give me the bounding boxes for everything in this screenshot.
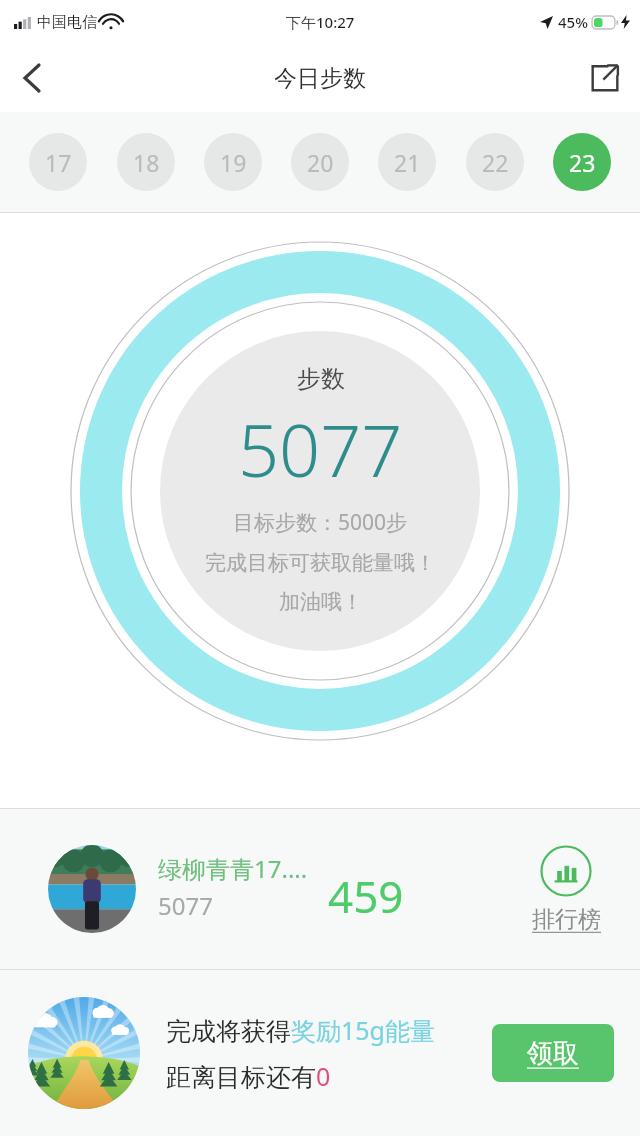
- staticText: 23: [569, 147, 596, 178]
- button[interactable]: 19: [204, 133, 262, 191]
- button[interactable]: 18: [117, 133, 175, 191]
- button[interactable]: 23: [553, 133, 611, 191]
- button[interactable]: 排行榜: [518, 845, 614, 934]
- staticText: 19: [220, 147, 247, 178]
- staticText: 20: [307, 147, 334, 178]
- staticText: 22: [482, 147, 509, 178]
- staticText: 5077: [238, 400, 403, 498]
- staticText: 459: [328, 866, 404, 926]
- staticText: 完成目标可获取能量哦！: [205, 550, 436, 576]
- button[interactable]: 22: [466, 133, 524, 191]
- staticText: 下午10:27: [286, 12, 355, 32]
- button[interactable]: Back: [0, 44, 64, 112]
- staticText: 距离目标还有0: [166, 1059, 331, 1093]
- staticText: 完成将获得奖励15g能量: [166, 1013, 435, 1047]
- button[interactable]: 21: [378, 133, 436, 191]
- staticText: 5077: [158, 889, 213, 922]
- button[interactable]: 17: [29, 133, 87, 191]
- staticText: 18: [133, 147, 160, 178]
- staticText: 17: [45, 147, 72, 178]
- staticText: 步数: [297, 364, 345, 394]
- staticText: 目标步数：5000步: [233, 508, 408, 537]
- staticText: 加油哦！: [279, 589, 363, 615]
- button[interactable]: Share: [570, 44, 640, 112]
- button[interactable]: 领取: [492, 1024, 614, 1082]
- staticText: 21: [394, 147, 421, 178]
- button[interactable]: 绿柳青青17....: [0, 809, 640, 969]
- staticText: 中国电信: [37, 13, 97, 32]
- staticText: 领取: [527, 1037, 579, 1070]
- staticText: 今日步数: [274, 64, 366, 93]
- staticText: 排行榜: [532, 905, 601, 934]
- staticText: 45%: [558, 12, 588, 32]
- staticText: 绿柳青青17....: [158, 852, 308, 885]
- button[interactable]: 20: [291, 133, 349, 191]
